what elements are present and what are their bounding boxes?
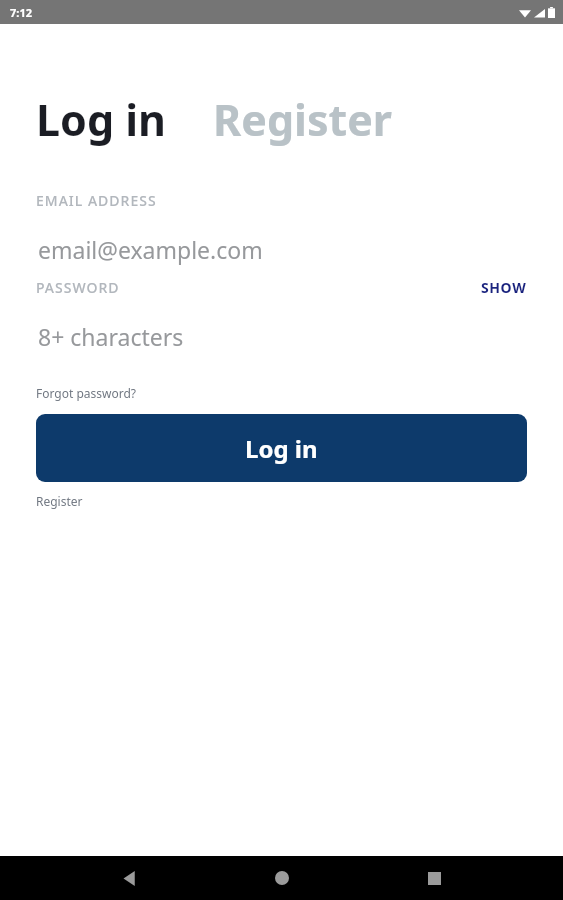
staticText: PASSWORD <box>36 278 120 297</box>
staticText: 8+ characters <box>38 321 184 352</box>
staticText: SHOW <box>481 278 527 297</box>
staticText: EMAIL ADDRESS <box>36 191 157 210</box>
staticText: 7:12 <box>10 5 32 20</box>
staticText: Register <box>36 493 83 509</box>
button[interactable]: Register <box>213 90 393 149</box>
button[interactable]: Register <box>36 493 83 509</box>
staticText: email@example.com <box>38 234 263 265</box>
staticText: Register <box>213 90 393 149</box>
staticText: Forgot password? <box>36 385 137 401</box>
button[interactable]: SHOW <box>481 278 527 297</box>
button[interactable]: Recents <box>410 856 458 900</box>
button[interactable]: Forgot password? <box>36 385 137 401</box>
staticText: Log in <box>36 90 167 149</box>
button[interactable]: Log in <box>36 90 167 149</box>
button[interactable]: email@example.com <box>36 232 527 266</box>
button[interactable]: Log in <box>36 414 527 482</box>
button[interactable]: 8+ characters <box>36 319 527 353</box>
staticText: Log in <box>245 432 318 465</box>
button[interactable]: Back <box>105 856 153 900</box>
button[interactable]: Home <box>258 856 306 900</box>
